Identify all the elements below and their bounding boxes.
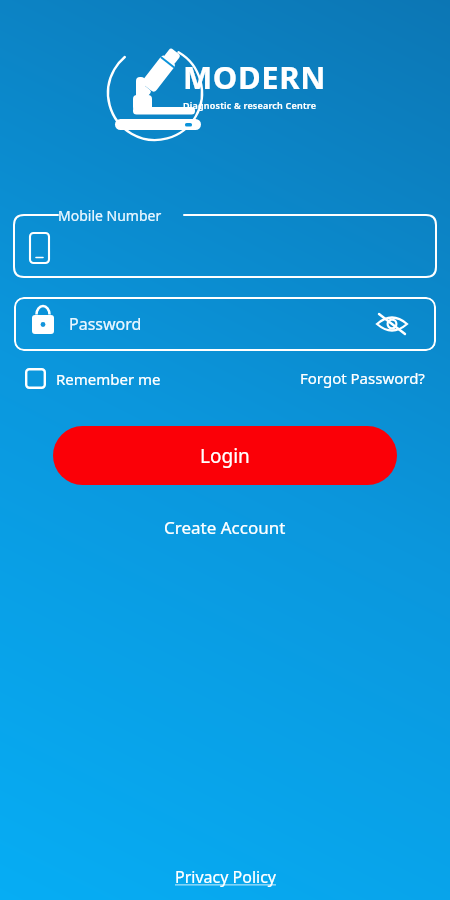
- staticText: Password: [69, 313, 142, 335]
- button[interactable]: Mobile Number: [14, 203, 436, 277]
- button[interactable]: Create Account: [152, 511, 298, 544]
- staticText: Remember me: [56, 369, 161, 389]
- button[interactable]: Forgot Password?: [300, 368, 425, 388]
- staticText: Forgot Password?: [300, 368, 425, 388]
- button[interactable]: Privacy Policy: [165, 862, 286, 892]
- staticText: Diagnostic & research Centre: [183, 99, 317, 111]
- staticText: Login: [200, 443, 250, 469]
- staticText: Privacy Policy: [175, 866, 276, 888]
- button[interactable]: Login: [53, 426, 397, 485]
- button[interactable]: Password: [14, 297, 436, 351]
- staticText: Mobile Number: [58, 206, 162, 225]
- staticText: Create Account: [164, 516, 286, 539]
- staticText: MODERN: [183, 56, 326, 98]
- button[interactable]: Remember me: [25, 368, 161, 389]
